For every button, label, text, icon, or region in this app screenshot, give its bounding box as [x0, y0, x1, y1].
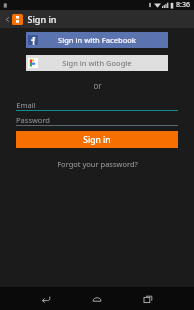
- button[interactable]: Navigate up: [3, 10, 12, 28]
- button[interactable]: Password: [16, 114, 178, 126]
- button[interactable]: Sign in with Facebook: [26, 32, 168, 48]
- staticText: Sign in with Google: [62, 58, 132, 68]
- button[interactable]: Home: [87, 289, 107, 309]
- staticText: Sign in with Facebook: [58, 35, 136, 45]
- staticText: Email: [16, 100, 36, 110]
- button[interactable]: Sign in with Google: [26, 55, 168, 71]
- staticText: Sign in: [83, 134, 111, 146]
- staticText: 8:36: [176, 0, 190, 10]
- button[interactable]: Email: [16, 99, 178, 111]
- staticText: Sign in: [27, 13, 57, 25]
- button[interactable]: Back: [36, 289, 56, 309]
- staticText: or: [93, 80, 102, 91]
- button[interactable]: Recent apps: [138, 289, 158, 309]
- staticText: Password: [16, 115, 50, 125]
- button[interactable]: Forgot your password?: [51, 157, 144, 171]
- staticText: Forgot your password?: [57, 159, 138, 169]
- button[interactable]: Sign in: [16, 131, 178, 148]
